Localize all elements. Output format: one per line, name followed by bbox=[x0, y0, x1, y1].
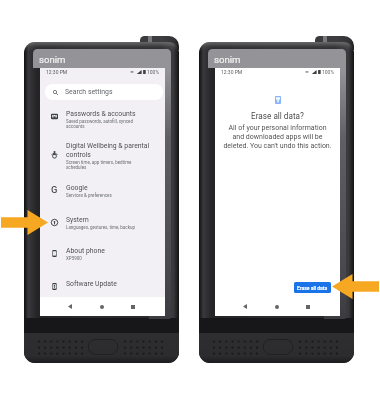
staticText: 12:30 PM bbox=[46, 69, 68, 75]
button[interactable]: Software Update bbox=[40, 275, 165, 304]
staticText: All of your personal information and dow… bbox=[215, 124, 340, 150]
staticText: Services & preferences bbox=[66, 193, 112, 198]
staticText: Passwords & accounts bbox=[66, 110, 136, 118]
button[interactable]: Back bbox=[233, 297, 257, 316]
button[interactable]: Search settings bbox=[45, 84, 163, 100]
staticText: 100% bbox=[147, 69, 160, 75]
staticText: About phone bbox=[66, 247, 105, 255]
staticText: Search settings bbox=[65, 88, 113, 96]
button[interactable]: Home bbox=[265, 297, 289, 316]
button[interactable]: Recent apps bbox=[121, 297, 145, 316]
staticText: Saved passwords, autofill, synced accoun… bbox=[66, 119, 134, 130]
button[interactable]: Home bbox=[90, 297, 114, 316]
button[interactable]: Recent apps bbox=[296, 297, 320, 316]
staticText: XP5900 bbox=[66, 256, 82, 261]
button[interactable]: Digital Wellbeing & parental controls bbox=[40, 137, 165, 175]
staticText: System bbox=[66, 216, 89, 224]
staticText: sonim bbox=[214, 54, 241, 65]
staticText: 12:30 PM bbox=[221, 69, 243, 75]
button[interactable]: Erase all data bbox=[294, 282, 331, 293]
staticText: sonim bbox=[39, 54, 66, 65]
button[interactable]: Passwords & accounts bbox=[40, 105, 165, 134]
staticText: Erase all data? bbox=[215, 111, 340, 121]
staticText: Screen time, app timers, bedtime schedul… bbox=[66, 160, 132, 171]
button[interactable]: Back bbox=[58, 297, 82, 316]
staticText: Google bbox=[66, 184, 88, 192]
staticText: Languages, gestures, time, backup bbox=[66, 225, 135, 230]
staticText: Erase all data bbox=[297, 285, 328, 291]
staticText: Software Update bbox=[66, 280, 117, 288]
staticText: 100% bbox=[322, 69, 335, 75]
staticText: Digital Wellbeing & parental controls bbox=[66, 142, 150, 159]
button[interactable]: System bbox=[40, 211, 165, 240]
button[interactable]: About phone bbox=[40, 242, 165, 271]
button[interactable]: G bbox=[40, 179, 165, 208]
staticText: G bbox=[51, 184, 58, 195]
